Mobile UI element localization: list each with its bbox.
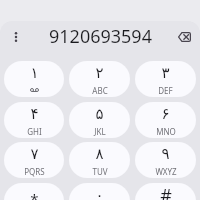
staticText: ۳ xyxy=(161,64,170,81)
staticText: ۷ xyxy=(30,145,39,162)
staticText: TUV xyxy=(92,166,108,177)
button[interactable]: ۲ xyxy=(69,61,130,97)
button[interactable]: * xyxy=(4,183,64,200)
button[interactable]: # xyxy=(135,183,196,200)
button[interactable]: ۸ xyxy=(69,142,130,178)
button[interactable]: ۳ xyxy=(135,61,196,97)
staticText: GHI xyxy=(27,126,42,137)
staticText: ۵ xyxy=(95,105,104,122)
button[interactable]: ۶ xyxy=(135,102,196,138)
staticText: ۰ xyxy=(95,186,104,200)
staticText: MNO xyxy=(156,126,176,137)
button[interactable]: ۷ xyxy=(4,142,64,178)
button[interactable]: ۱ xyxy=(4,61,64,97)
button[interactable]: ۵ xyxy=(69,102,130,138)
button[interactable]: More options xyxy=(6,27,26,47)
staticText: ۴ xyxy=(30,105,39,122)
staticText: * xyxy=(30,189,39,200)
staticText: WXYZ xyxy=(155,166,177,177)
staticText: JKL xyxy=(94,126,106,137)
staticText: ۹ xyxy=(161,145,170,162)
button[interactable]: ۴ xyxy=(4,102,64,138)
staticText: ۸ xyxy=(95,145,104,162)
button[interactable]: ۰ xyxy=(69,183,130,200)
staticText: ۲ xyxy=(95,64,104,81)
staticText: # xyxy=(160,183,172,200)
staticText: ۱ xyxy=(30,64,39,81)
staticText: DEF xyxy=(158,85,173,96)
staticText: PQRS xyxy=(24,166,45,177)
staticText: ۶ xyxy=(161,105,170,122)
staticText: 9120693594 xyxy=(49,24,152,49)
staticText: ABC xyxy=(92,85,108,96)
button[interactable]: ۹ xyxy=(135,142,196,178)
button[interactable]: Backspace xyxy=(174,27,194,47)
